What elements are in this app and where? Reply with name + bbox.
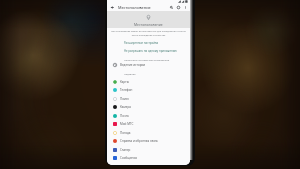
staticText: Ведение истории: [120, 63, 146, 67]
staticText: Карты: [120, 80, 129, 84]
button[interactable]: Не разрешать ни одному приложению: [107, 48, 190, 54]
button[interactable]: Поиск: [107, 94, 190, 103]
button[interactable]: Back: [109, 4, 116, 11]
staticText: Почта: [120, 114, 129, 118]
button[interactable]: Карты: [107, 77, 190, 86]
button[interactable]: Телефон: [107, 85, 190, 94]
button[interactable]: More options: [182, 4, 189, 11]
button[interactable]: Help: [175, 4, 182, 11]
staticText: Недавние: [124, 72, 136, 75]
staticText: Посмотреть историю местоположений: [124, 58, 170, 61]
staticText: Расширенные настройки: [124, 41, 159, 45]
staticText: Местоположение может использоваться для …: [111, 30, 186, 36]
button[interactable]: Расширенные настройки: [107, 40, 190, 46]
staticText: Справка и обратная связь: [120, 139, 158, 143]
button[interactable]: Ведение истории: [107, 60, 190, 69]
staticText: Местоположение: [118, 5, 151, 10]
button[interactable]: Почта: [107, 111, 190, 120]
staticText: Камера: [120, 105, 131, 109]
staticText: Местоположение: [134, 22, 163, 27]
button[interactable]: Сканер: [107, 145, 190, 154]
staticText: Телефон: [120, 88, 133, 92]
button[interactable]: Мой МТС: [107, 119, 190, 128]
staticText: Поиск: [120, 97, 129, 101]
staticText: Сканер: [120, 148, 131, 152]
button[interactable]: Погода: [107, 128, 190, 137]
staticText: Мой МТС: [120, 122, 134, 126]
staticText: Погода: [120, 131, 131, 135]
button[interactable]: Search: [168, 4, 175, 11]
button[interactable]: Почта: [107, 162, 190, 165]
staticText: Не разрешать ни одному приложению: [124, 49, 177, 53]
button[interactable]: Сообщения: [107, 153, 190, 162]
staticText: Сообщения: [120, 156, 138, 160]
button[interactable]: Справка и обратная связь: [107, 136, 190, 145]
button[interactable]: Камера: [107, 102, 190, 111]
